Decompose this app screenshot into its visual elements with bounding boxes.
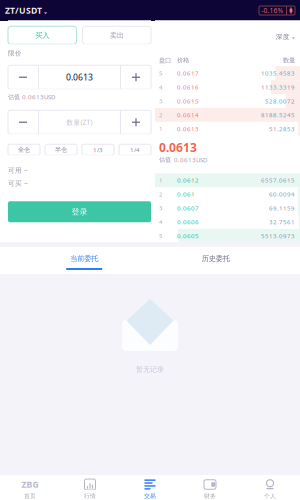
- staticText: 2: [159, 111, 162, 119]
- staticText: 4: [159, 218, 162, 226]
- staticText: 交易: [144, 492, 156, 500]
- staticText: 0.0616: [177, 83, 199, 91]
- staticText: 1/3: [93, 146, 103, 154]
- button[interactable]: 当前委托: [37, 247, 132, 274]
- button[interactable]: 4: [155, 215, 300, 229]
- button[interactable]: Decrease: [8, 110, 38, 134]
- staticText: 半仓: [55, 146, 67, 154]
- staticText: 登录: [71, 207, 87, 217]
- staticText: 深度: [276, 33, 290, 41]
- staticText: 价格: [177, 56, 189, 64]
- staticText: 2: [159, 190, 162, 198]
- staticText: 估值 0.0613USD: [8, 93, 55, 101]
- button[interactable]: 5: [155, 229, 300, 243]
- button[interactable]: 3: [155, 94, 300, 108]
- button[interactable]: 全仓: [8, 144, 40, 155]
- staticText: 3: [159, 97, 162, 105]
- staticText: 1133.3319: [261, 83, 295, 91]
- button[interactable]: 深度: [276, 32, 300, 41]
- staticText: 0.0613USD: [174, 156, 207, 164]
- staticText: 0.061: [177, 190, 195, 198]
- staticText: 1/4: [130, 146, 140, 154]
- button[interactable]: 2: [155, 187, 300, 201]
- button[interactable]: 1/4: [119, 144, 151, 155]
- button[interactable]: ZT/USDT: [0, 0, 47, 21]
- staticText: 51.2853: [269, 125, 295, 133]
- staticText: ZT/USDT: [5, 5, 42, 16]
- staticText: 首页: [24, 492, 36, 500]
- staticText: 0.0614: [177, 111, 199, 119]
- staticText: -0.16%: [261, 6, 283, 15]
- staticText: 1: [159, 176, 162, 184]
- staticText: 可用 ~: [8, 166, 28, 175]
- button[interactable]: Increase: [121, 110, 151, 134]
- staticText: 0.0605: [177, 232, 199, 240]
- staticText: 暂无记录: [136, 365, 164, 374]
- staticText: 5513.0973: [261, 232, 295, 240]
- staticText: 当前委托: [70, 254, 98, 263]
- staticText: 69.1159: [269, 204, 295, 212]
- button[interactable]: ZBG: [0, 475, 60, 500]
- button[interactable]: 个人: [240, 475, 300, 500]
- staticText: 60.0094: [269, 190, 295, 198]
- staticText: 0.0613: [177, 125, 199, 133]
- button[interactable]: 4: [155, 80, 300, 94]
- staticText: 1: [159, 125, 162, 133]
- button[interactable]: 登录: [8, 201, 151, 222]
- button[interactable]: 半仓: [45, 144, 77, 155]
- staticText: 0.0607: [177, 204, 199, 212]
- staticText: 盘口: [159, 56, 171, 64]
- staticText: 528.0072: [265, 97, 295, 105]
- staticText: 数量(ZT): [66, 118, 92, 127]
- staticText: 4: [159, 83, 162, 91]
- staticText: 32.7561: [269, 218, 295, 226]
- staticText: 可买 ~: [8, 179, 28, 188]
- staticText: 历史委托: [202, 254, 230, 263]
- staticText: 限价: [8, 49, 22, 57]
- staticText: 0.0606: [177, 218, 199, 226]
- staticText: 5: [159, 232, 162, 240]
- button[interactable]: 2: [155, 108, 300, 122]
- button[interactable]: 1: [155, 173, 300, 187]
- staticText: 个人: [264, 492, 276, 500]
- staticText: 0.0615: [177, 97, 199, 105]
- staticText: 数量: [283, 56, 295, 64]
- staticText: 买入: [35, 31, 49, 40]
- staticText: 0.0617: [177, 69, 199, 77]
- staticText: 0.0612: [177, 176, 199, 184]
- staticText: ZBG: [21, 479, 38, 490]
- staticText: 估值: [159, 156, 171, 164]
- staticText: 3: [159, 204, 162, 212]
- staticText: 6557.0615: [261, 176, 295, 184]
- button[interactable]: 行情: [60, 475, 120, 500]
- button[interactable]: 买入: [8, 26, 76, 44]
- button[interactable]: 交易: [120, 475, 180, 500]
- button[interactable]: -0.16%: [259, 0, 300, 21]
- button[interactable]: 1/3: [82, 144, 114, 155]
- staticText: 行情: [84, 492, 96, 500]
- button[interactable]: 5: [155, 66, 300, 80]
- staticText: 0.0613: [66, 71, 93, 83]
- staticText: 1035.4583: [261, 69, 295, 77]
- staticText: 8188.5245: [261, 111, 295, 119]
- staticText: 财务: [204, 492, 216, 500]
- staticText: 全仓: [18, 146, 30, 154]
- button[interactable]: 1: [155, 122, 300, 136]
- button[interactable]: 卖出: [82, 26, 151, 44]
- button[interactable]: 3: [155, 201, 300, 215]
- button[interactable]: Increase: [121, 65, 151, 89]
- staticText: 5: [159, 69, 162, 77]
- staticText: 卖出: [110, 31, 124, 40]
- button[interactable]: 历史委托: [168, 247, 263, 274]
- button[interactable]: 财务: [180, 475, 240, 500]
- staticText: 0.0613: [159, 139, 197, 155]
- button[interactable]: Decrease: [8, 65, 38, 89]
